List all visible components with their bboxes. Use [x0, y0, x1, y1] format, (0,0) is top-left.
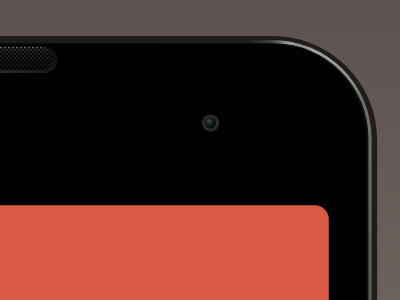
button[interactable]: Smartphone close-up photo	[0, 0, 400, 300]
